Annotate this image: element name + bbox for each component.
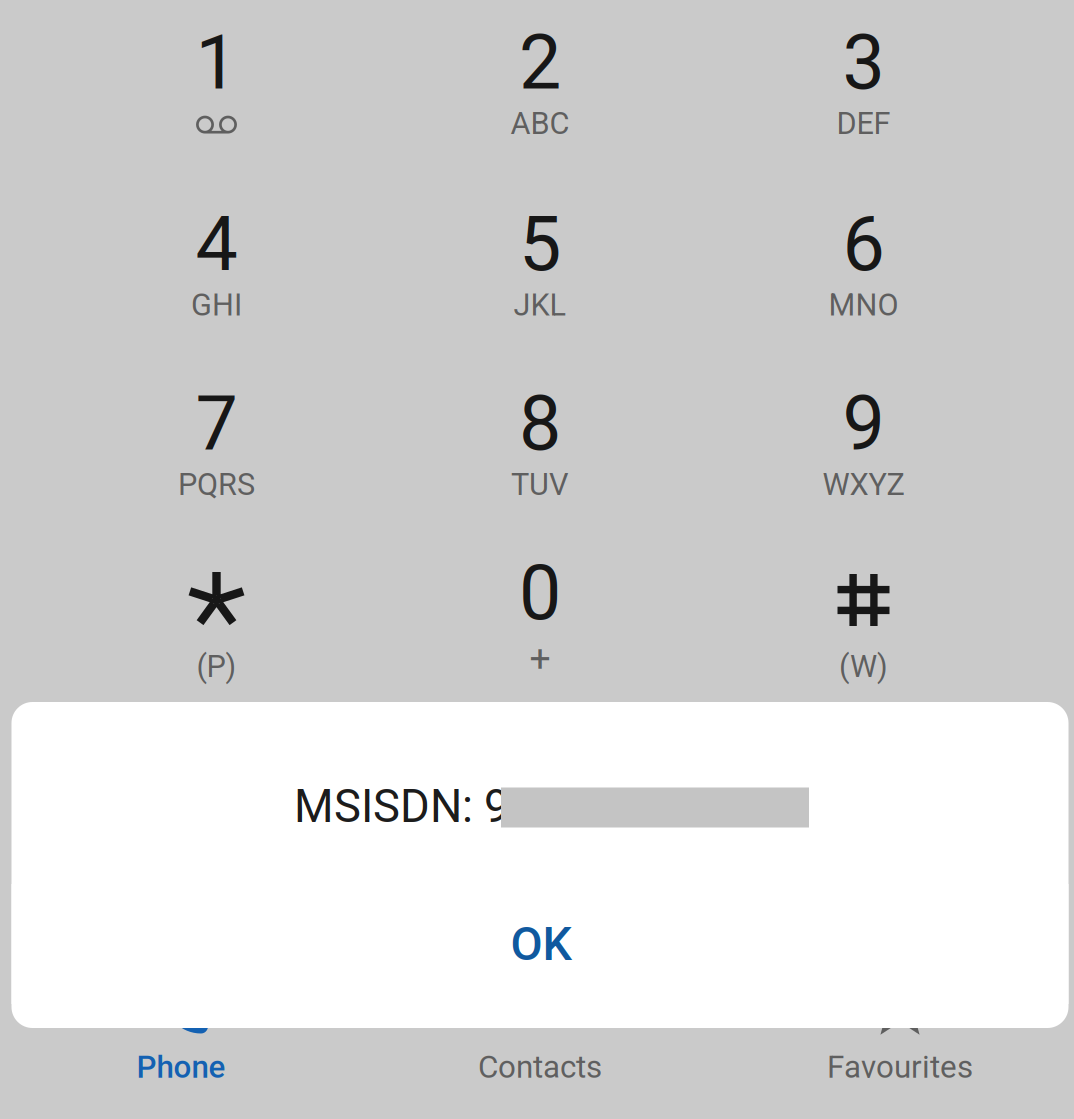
button[interactable]: Favourites xyxy=(721,984,1074,1100)
button[interactable]: Contacts xyxy=(361,984,719,1100)
button[interactable]: Star (P) xyxy=(61,534,371,710)
button[interactable]: 6 xyxy=(708,187,1018,363)
staticText: 4 xyxy=(195,200,237,288)
button[interactable]: Hash (W) xyxy=(708,534,1018,710)
staticText: (W) xyxy=(839,648,888,684)
button[interactable]: 4 xyxy=(61,187,371,363)
staticText: ABC xyxy=(510,105,569,141)
button[interactable]: 3 xyxy=(708,6,1018,182)
staticText: Contacts xyxy=(478,1049,602,1085)
staticText: MNO xyxy=(828,287,898,323)
staticText: MSISDN: 9 xyxy=(294,780,509,833)
staticText: JKL xyxy=(513,287,566,323)
button[interactable]: OK xyxy=(11,884,1068,1004)
button[interactable]: 8 xyxy=(385,367,695,543)
staticText: PQRS xyxy=(178,466,255,502)
staticText: 3 xyxy=(842,19,884,107)
staticText: Phone xyxy=(136,1049,225,1085)
staticText: TUV xyxy=(511,466,569,502)
staticText: (P) xyxy=(196,648,236,684)
button[interactable]: 2 xyxy=(385,6,695,182)
staticText: 2 xyxy=(519,19,561,107)
button[interactable]: 5 xyxy=(385,187,695,363)
staticText: DEF xyxy=(836,105,890,141)
button[interactable]: 0 xyxy=(385,534,695,710)
staticText: WXYZ xyxy=(822,466,904,502)
staticText: GHI xyxy=(191,287,242,323)
staticText: OK xyxy=(510,917,571,971)
staticText: 5 xyxy=(519,200,561,288)
staticText: 1 xyxy=(195,19,237,107)
staticText: 9 xyxy=(842,380,884,468)
button[interactable]: Phone xyxy=(2,984,360,1100)
button[interactable]: 7 xyxy=(61,367,371,543)
staticText: 6 xyxy=(842,200,884,288)
staticText: 0 xyxy=(519,549,561,637)
button[interactable]: 9 xyxy=(708,367,1018,543)
staticText: Favourites xyxy=(827,1049,973,1085)
button[interactable]: 1 xyxy=(61,6,371,182)
staticText: 8 xyxy=(519,380,561,468)
staticText: + xyxy=(529,637,550,680)
staticText: 7 xyxy=(195,380,237,468)
